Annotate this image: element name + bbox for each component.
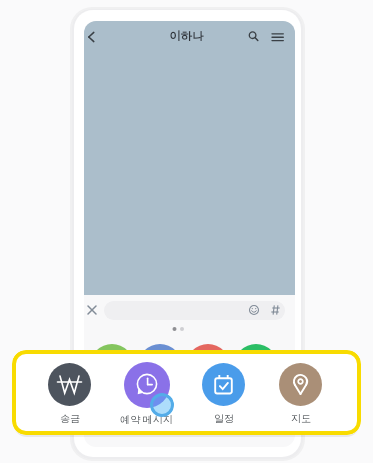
- button[interactable]: 일정: [185, 350, 262, 435]
- button[interactable]: 지도: [262, 350, 339, 435]
- button[interactable]: [85, 303, 99, 317]
- button[interactable]: [84, 25, 99, 49]
- staticText: 지도: [291, 412, 311, 425]
- button[interactable]: [104, 301, 285, 320]
- button[interactable]: [268, 27, 288, 47]
- staticText: 송금: [60, 412, 80, 425]
- button[interactable]: [245, 27, 263, 45]
- staticText: 이하나: [169, 29, 204, 43]
- staticText: 예약 메시지: [120, 412, 173, 426]
- button[interactable]: 송금: [31, 350, 108, 435]
- staticText: 일정: [214, 412, 234, 425]
- button[interactable]: 예약 메시지: [108, 350, 185, 435]
